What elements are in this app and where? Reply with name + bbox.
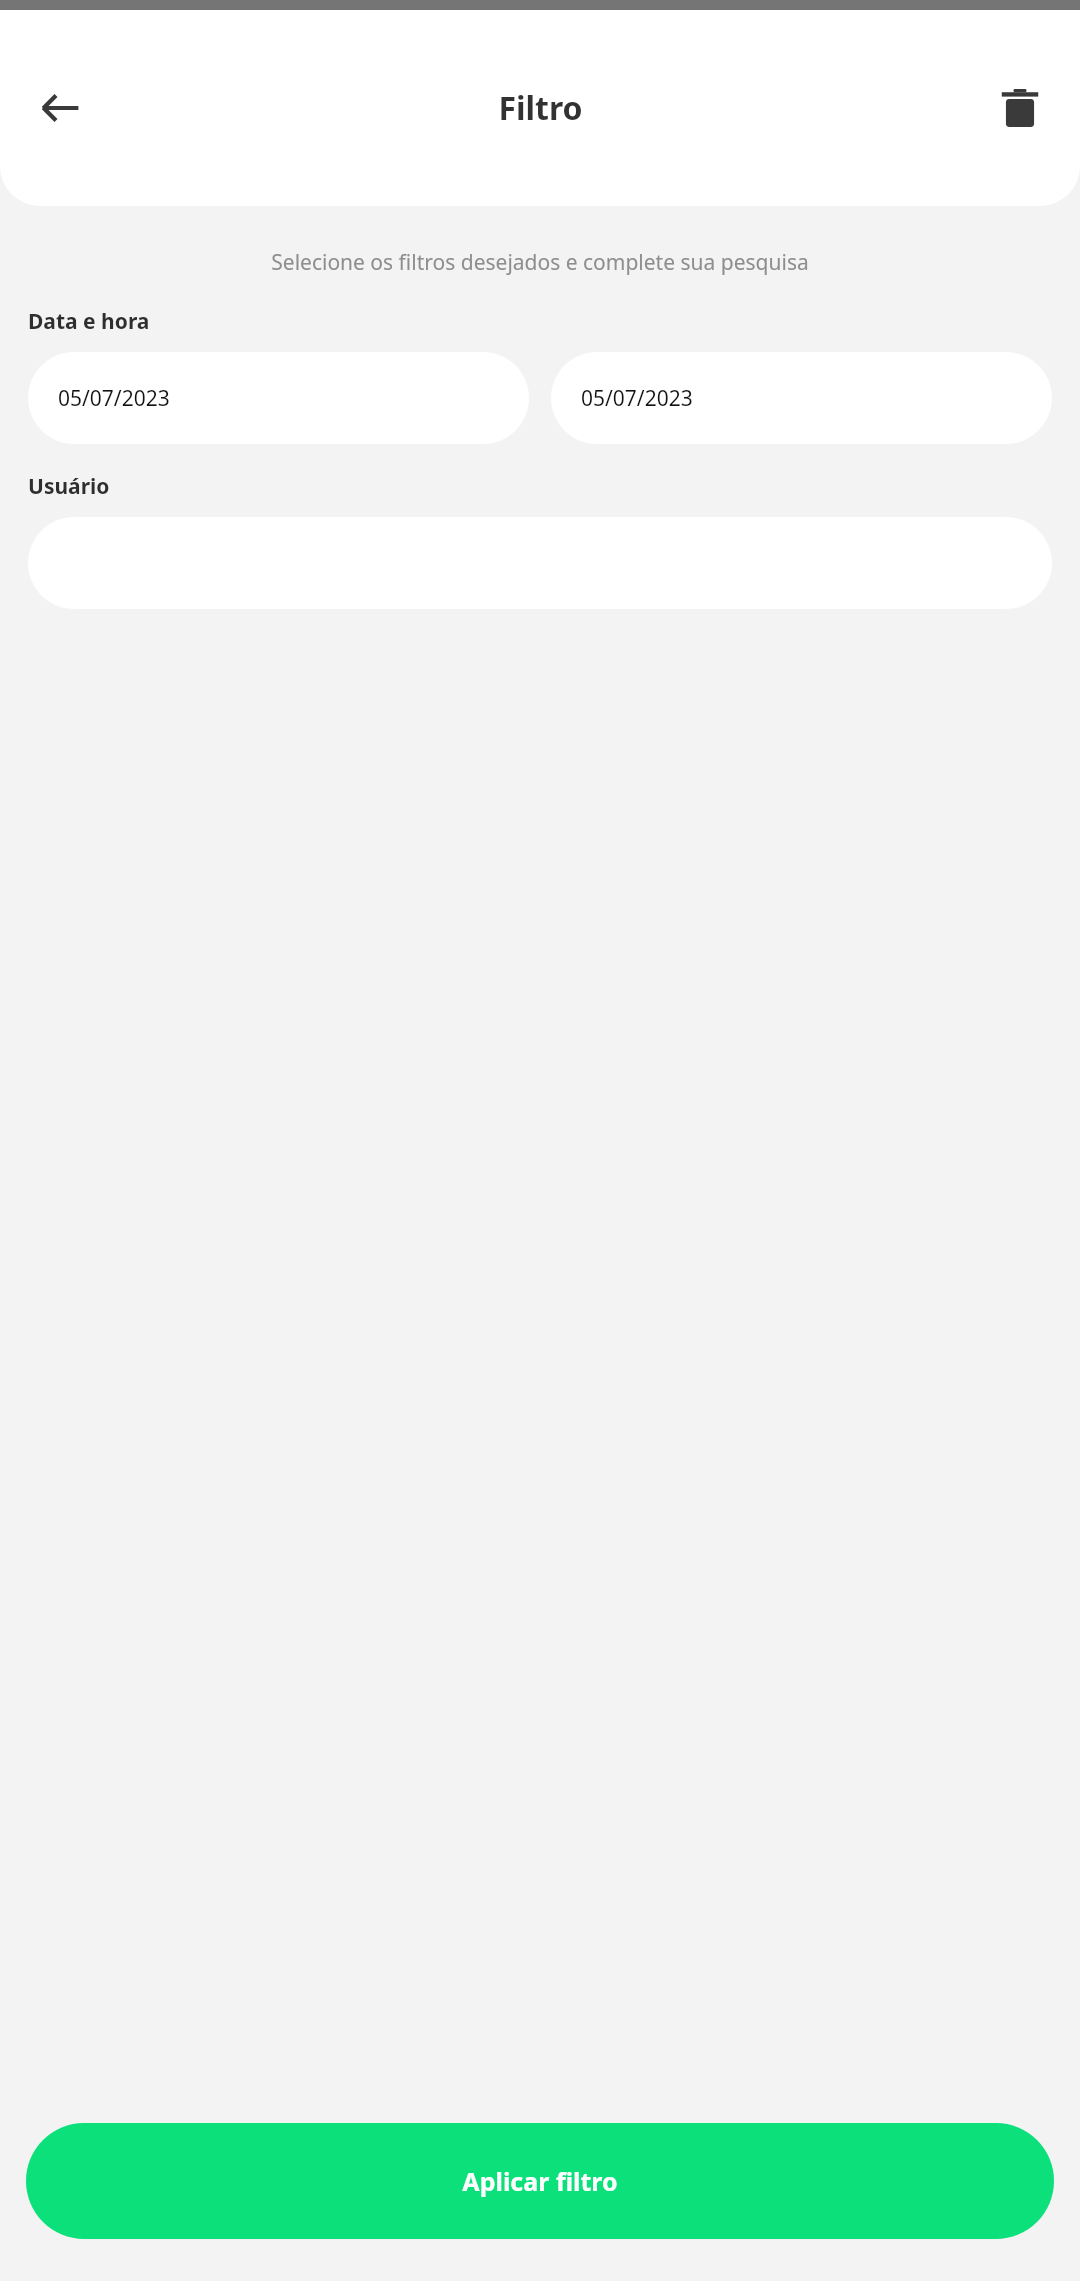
button[interactable]: Limpar filtros (980, 68, 1060, 148)
staticText: Data e hora (28, 307, 150, 336)
staticText: 05/07/2023 (58, 384, 170, 413)
button[interactable]: 05/07/2023 (551, 352, 1052, 444)
button[interactable]: Aplicar filtro (26, 2123, 1054, 2239)
staticText: 05/07/2023 (581, 384, 693, 413)
staticText: Usuário (28, 472, 110, 501)
staticText: Selecione os filtros desejados e complet… (50, 248, 1030, 277)
button[interactable]: Voltar (18, 66, 102, 150)
button[interactable]: 05/07/2023 (28, 352, 529, 444)
staticText: Filtro (498, 86, 583, 130)
staticText: Aplicar filtro (462, 2164, 618, 2198)
